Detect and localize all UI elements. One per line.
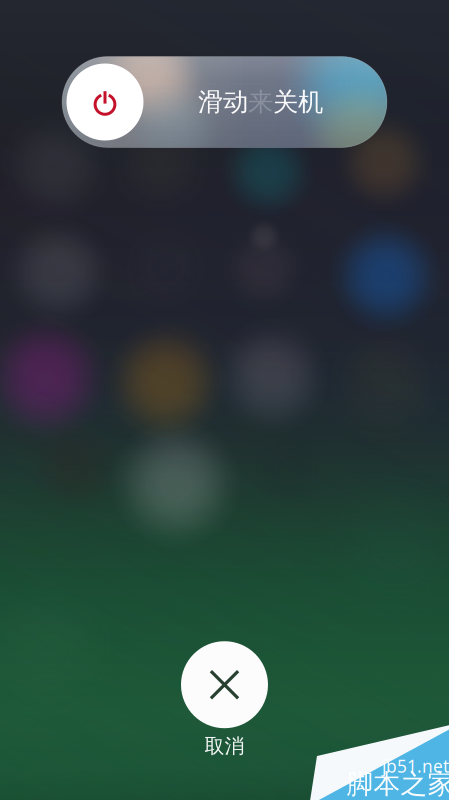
staticText: 取消	[204, 734, 244, 758]
staticText: jb51.net	[382, 754, 449, 777]
staticText: 脚本之家	[346, 768, 449, 800]
staticText: 滑动	[198, 86, 248, 117]
staticText: 关机	[273, 86, 323, 117]
button[interactable]: 取消	[164, 642, 284, 758]
button[interactable]: Slide to power off	[60, 57, 150, 147]
staticText: 来	[248, 86, 273, 117]
